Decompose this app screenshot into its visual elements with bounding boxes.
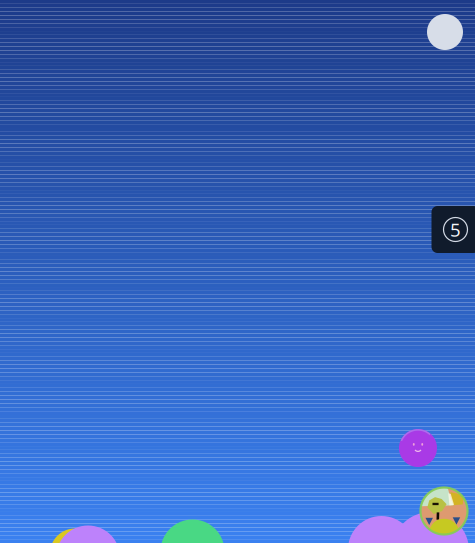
button[interactable]: 5 bubbles — [431, 206, 475, 253]
staticText: 5 — [450, 217, 461, 242]
button[interactable]: Profile bubble — [420, 487, 467, 534]
button[interactable]: Bubble — [399, 429, 437, 467]
